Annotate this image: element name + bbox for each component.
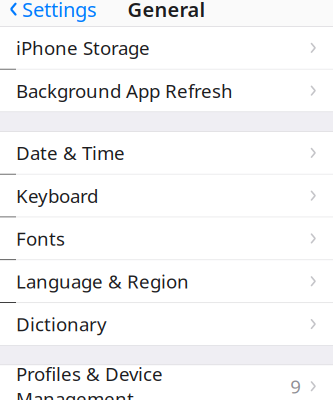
staticText: Date & Time [16,140,125,165]
staticText: Fonts [16,226,65,251]
button[interactable]: Settings [0,0,97,28]
staticText: Background App Refresh [16,78,233,103]
staticText: 9 [290,374,301,399]
staticText: iPhone Storage [16,35,150,60]
button[interactable]: Profiles & Device Management [0,365,333,400]
button[interactable]: Fonts [0,217,333,260]
staticText: Language & Region [16,269,189,294]
staticText: Profiles & Device Management [16,361,163,400]
staticText: Settings [22,0,97,22]
staticText: Keyboard [16,183,98,208]
button[interactable]: Date & Time [0,132,333,175]
staticText: General [127,0,205,22]
button[interactable]: Background App Refresh [0,70,333,112]
button[interactable]: Dictionary [0,303,333,345]
button[interactable]: Keyboard [0,175,333,217]
button[interactable]: Language & Region [0,260,333,303]
staticText: Dictionary [16,312,107,336]
button[interactable]: iPhone Storage [0,27,333,70]
